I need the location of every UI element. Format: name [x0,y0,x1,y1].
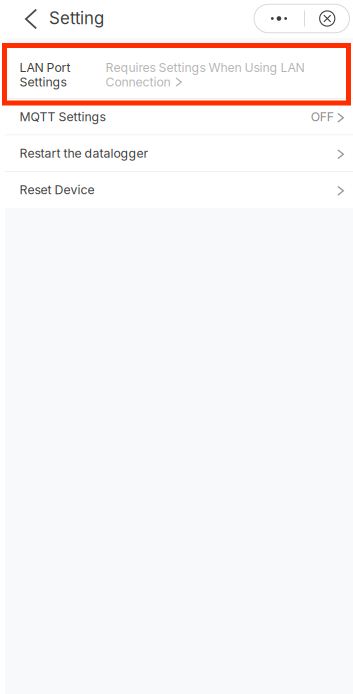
staticText: OFF [311,109,334,124]
button[interactable]: LAN Port [0,43,353,98]
button[interactable]: More and close [254,0,353,38]
button[interactable]: Restart the datalogger [0,135,353,171]
staticText: Connection [105,75,170,89]
staticText: Restart the datalogger [19,146,148,161]
button[interactable]: Reset Device [0,172,353,207]
button[interactable]: Setting [0,0,118,38]
staticText: Setting [49,8,104,28]
staticText: MQTT Settings [19,109,105,124]
staticText: Requires Settings When Using LAN [105,60,304,75]
button[interactable]: MQTT Settings [0,99,353,134]
staticText: LAN Port [19,60,70,75]
staticText: Reset Device [19,182,94,197]
staticText: Settings [19,75,66,89]
